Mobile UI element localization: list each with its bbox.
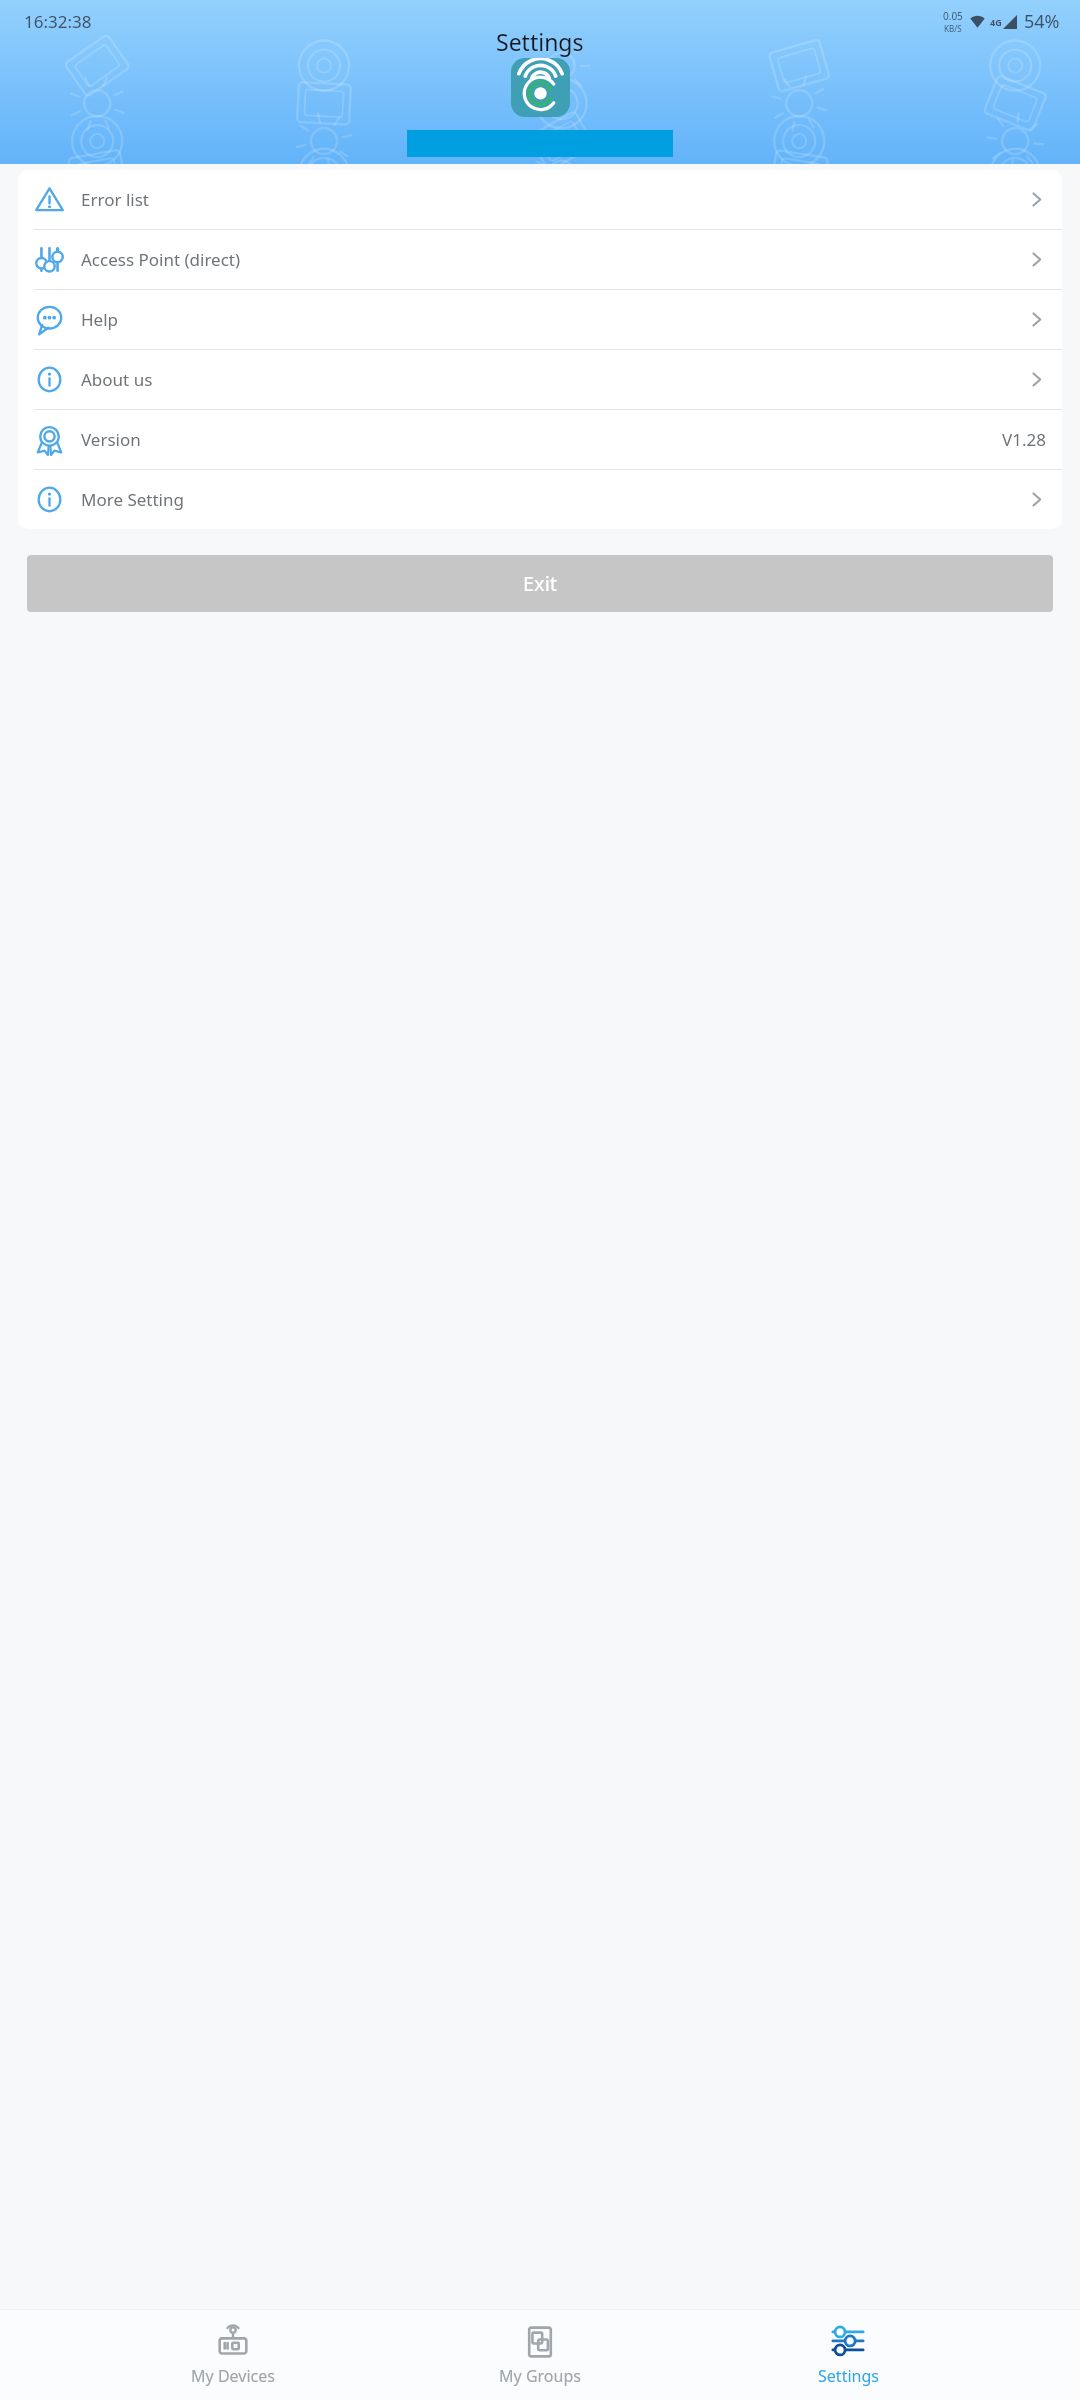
- staticText: More Setting: [81, 488, 184, 511]
- staticText: Settings: [818, 2365, 879, 2387]
- button[interactable]: About us: [18, 350, 1062, 409]
- button[interactable]: Help: [18, 290, 1062, 349]
- staticText: Error list: [81, 188, 149, 211]
- staticText: About us: [81, 368, 153, 391]
- staticText: V1.28: [1002, 428, 1046, 451]
- button[interactable]: Access Point (direct): [18, 230, 1062, 289]
- button[interactable]: More Setting: [18, 470, 1062, 529]
- button[interactable]: Version: [18, 410, 1062, 469]
- staticText: My Groups: [499, 2365, 581, 2387]
- staticText: 4G: [990, 16, 1002, 28]
- staticText: Settings: [496, 26, 584, 57]
- staticText: Version: [81, 428, 141, 451]
- staticText: KB/S: [944, 23, 962, 34]
- button[interactable]: Settings: [773, 2318, 923, 2393]
- button[interactable]: Error list: [18, 170, 1062, 229]
- button[interactable]: My Groups: [465, 2318, 615, 2393]
- staticText: Access Point (direct): [81, 248, 241, 271]
- staticText: 0.05: [943, 9, 963, 23]
- staticText: Help: [81, 308, 119, 331]
- staticText: 54%: [1024, 9, 1060, 34]
- staticText: Exit: [523, 570, 558, 597]
- button[interactable]: My Devices: [158, 2318, 308, 2393]
- staticText: My Devices: [191, 2365, 275, 2387]
- staticText: 16:32:38: [24, 10, 92, 33]
